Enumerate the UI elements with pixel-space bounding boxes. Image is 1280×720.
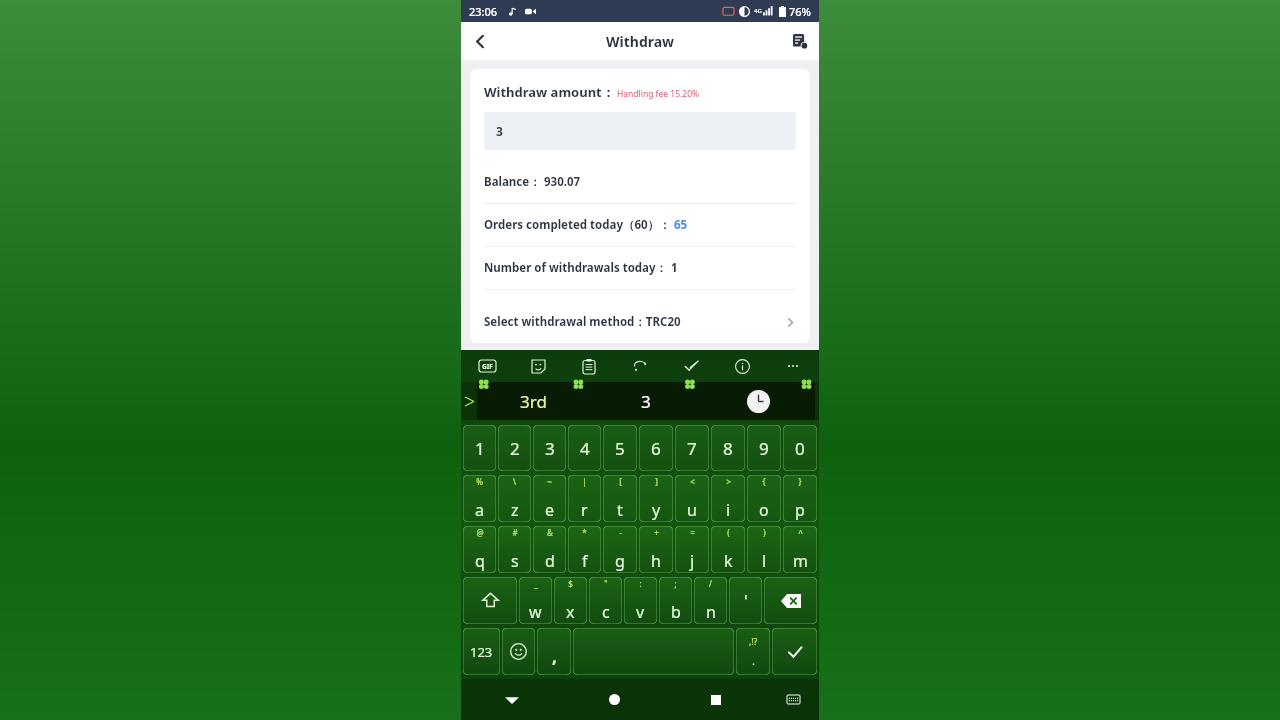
staticText: n (706, 601, 716, 623)
staticText: # (512, 527, 518, 538)
button[interactable] (772, 628, 817, 675)
button[interactable]: 2 (498, 425, 531, 471)
button[interactable]: GIF (473, 352, 501, 380)
staticText: 6 (651, 437, 661, 460)
staticText: k (724, 550, 733, 572)
button[interactable]: 9 (747, 425, 781, 471)
button[interactable]: 6 (639, 425, 673, 471)
staticText: Withdraw amount： (484, 83, 615, 101)
button[interactable]: ^ (783, 526, 817, 573)
button[interactable]: Clipboard (575, 352, 603, 380)
button[interactable]: / (694, 577, 727, 624)
staticText: m (793, 550, 808, 572)
button[interactable]: 3 (533, 425, 566, 471)
button[interactable]: 8 (711, 425, 745, 471)
button[interactable]: = (675, 526, 709, 573)
staticText: . (752, 653, 755, 668)
button[interactable]: Withdrawal records (781, 22, 819, 60)
staticText: o (759, 499, 769, 521)
button[interactable]: Info (728, 352, 756, 380)
staticText: r (581, 499, 588, 521)
button[interactable] (573, 628, 734, 675)
button[interactable]: { (747, 475, 781, 522)
staticText: / (709, 578, 712, 589)
button[interactable]: @ (463, 526, 496, 573)
staticText: 76% (789, 4, 811, 19)
staticText: 0 (795, 437, 805, 460)
button[interactable]: 0 (783, 425, 817, 471)
button[interactable]: 4 (568, 425, 601, 471)
button[interactable]: + (639, 526, 673, 573)
staticText: e (545, 499, 555, 521)
button[interactable]: ,!? (736, 628, 770, 675)
staticText: ^ (798, 527, 803, 538)
button[interactable]: ] (639, 475, 673, 522)
button[interactable]: ) (747, 526, 781, 573)
button[interactable]: 3 (484, 112, 796, 150)
staticText: - (619, 527, 622, 538)
button[interactable]: Spell check (677, 352, 705, 380)
staticText: b (671, 601, 681, 623)
staticText: d (545, 550, 555, 572)
staticText: [ (619, 476, 622, 487)
button[interactable]: > (711, 475, 745, 522)
staticText: ,!? (749, 636, 758, 648)
button[interactable]: Recents (665, 679, 767, 720)
button[interactable]: | (568, 475, 601, 522)
button[interactable]: < (675, 475, 709, 522)
button[interactable] (463, 577, 517, 624)
button[interactable]: 7 (675, 425, 709, 471)
staticText: 3rd (520, 390, 547, 413)
button[interactable]: Clock (702, 382, 815, 420)
staticText: % (476, 476, 483, 487)
button[interactable]: 123 (463, 628, 500, 675)
button[interactable]: ~ (533, 475, 566, 522)
button[interactable]: 3rd (477, 382, 589, 420)
button[interactable] (502, 628, 535, 675)
button[interactable]: , (537, 628, 571, 675)
staticText: 9 (759, 437, 769, 460)
button[interactable]: 3 (589, 382, 702, 420)
staticText: ~ (547, 476, 552, 487)
button[interactable]: ; (659, 577, 692, 624)
staticText: t (617, 499, 623, 521)
staticText: 4 (580, 437, 590, 460)
staticText: 1 (475, 437, 485, 460)
button[interactable]: Keyboard (767, 679, 819, 720)
button[interactable]: Back (461, 679, 563, 720)
button[interactable]: _ (519, 577, 552, 624)
button[interactable]: } (783, 475, 817, 522)
button[interactable]: * (568, 526, 601, 573)
button[interactable]: Home (563, 679, 665, 720)
button[interactable]: More (779, 352, 807, 380)
button[interactable]: 5 (603, 425, 637, 471)
staticText: ( (727, 527, 730, 538)
staticText: + (654, 527, 659, 538)
button[interactable]: $ (554, 577, 587, 624)
button[interactable]: - (603, 526, 637, 573)
staticText: 3 (496, 123, 503, 139)
staticText: q (475, 550, 485, 572)
staticText: y (652, 499, 661, 521)
button[interactable]: Select withdrawal method：TRC20 (484, 301, 796, 343)
button[interactable]: & (533, 526, 566, 573)
button[interactable]: ' (729, 577, 762, 624)
button[interactable]: Translate (626, 352, 654, 380)
button[interactable]: \ (498, 475, 531, 522)
button[interactable]: " (589, 577, 622, 624)
button[interactable]: # (498, 526, 531, 573)
staticText: 65 (671, 217, 688, 233)
button[interactable]: Stickers (524, 352, 552, 380)
staticText: 23:06 (469, 4, 498, 19)
staticText: ] (655, 476, 658, 487)
button[interactable]: ( (711, 526, 745, 573)
button[interactable] (764, 577, 817, 624)
button[interactable]: : (624, 577, 657, 624)
staticText: 3 (641, 390, 651, 413)
button[interactable]: % (463, 475, 496, 522)
button[interactable]: Back (461, 22, 499, 60)
staticText: a (475, 499, 484, 521)
staticText: } (798, 476, 802, 487)
button[interactable]: [ (603, 475, 637, 522)
button[interactable]: 1 (463, 425, 496, 471)
